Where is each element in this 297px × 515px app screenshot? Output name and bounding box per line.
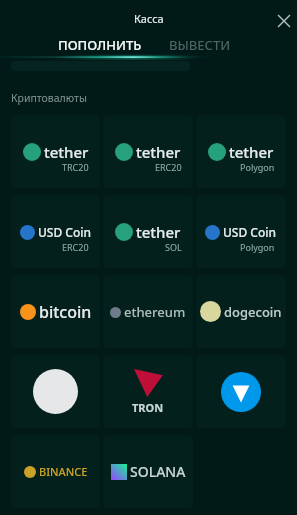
- staticText: Касса: [134, 11, 164, 26]
- button[interactable]: SOLANA: [103, 435, 193, 508]
- staticText: tether: [229, 142, 274, 162]
- button[interactable]: ВЫВЕСТИ: [160, 34, 240, 56]
- staticText: SOL: [165, 241, 182, 253]
- button[interactable]: tether: [103, 115, 193, 188]
- button[interactable]: tether: [103, 195, 193, 268]
- button[interactable]: [196, 355, 286, 428]
- staticText: ethereum: [124, 303, 186, 321]
- staticText: TRC20: [62, 161, 89, 173]
- staticText: BINANCE: [39, 464, 88, 479]
- staticText: USD Coin: [38, 224, 92, 240]
- button[interactable]: [11, 355, 100, 428]
- button[interactable]: USD Coin: [11, 195, 100, 268]
- staticText: ВЫВЕСТИ: [169, 36, 231, 54]
- button[interactable]: tether: [196, 115, 286, 188]
- button[interactable]: TRON: [103, 355, 193, 428]
- staticText: tether: [136, 222, 181, 242]
- button[interactable]: ethereum: [103, 275, 193, 348]
- staticText: ERC20: [62, 241, 89, 253]
- button[interactable]: BINANCE: [11, 435, 100, 508]
- staticText: Polygon: [240, 241, 275, 253]
- staticText: ПОПОЛНИТЬ: [58, 36, 142, 54]
- staticText: Криптовалюты: [11, 91, 87, 105]
- button[interactable]: dogecoin: [196, 275, 286, 348]
- staticText: dogecoin: [224, 303, 282, 321]
- staticText: USD Coin: [223, 224, 277, 240]
- staticText: bitcoin: [39, 301, 92, 323]
- button[interactable]: tether: [11, 115, 100, 188]
- staticText: ERC20: [155, 161, 182, 173]
- button[interactable]: ПОПОЛНИТЬ: [50, 34, 150, 56]
- staticText: tether: [136, 142, 181, 162]
- button[interactable]: bitcoin: [11, 275, 100, 348]
- button[interactable]: Close: [272, 9, 296, 33]
- staticText: TRON: [132, 400, 164, 415]
- staticText: Polygon: [240, 161, 275, 173]
- button[interactable]: USD Coin: [196, 195, 286, 268]
- staticText: tether: [44, 142, 89, 162]
- staticText: SOLANA: [130, 462, 186, 481]
